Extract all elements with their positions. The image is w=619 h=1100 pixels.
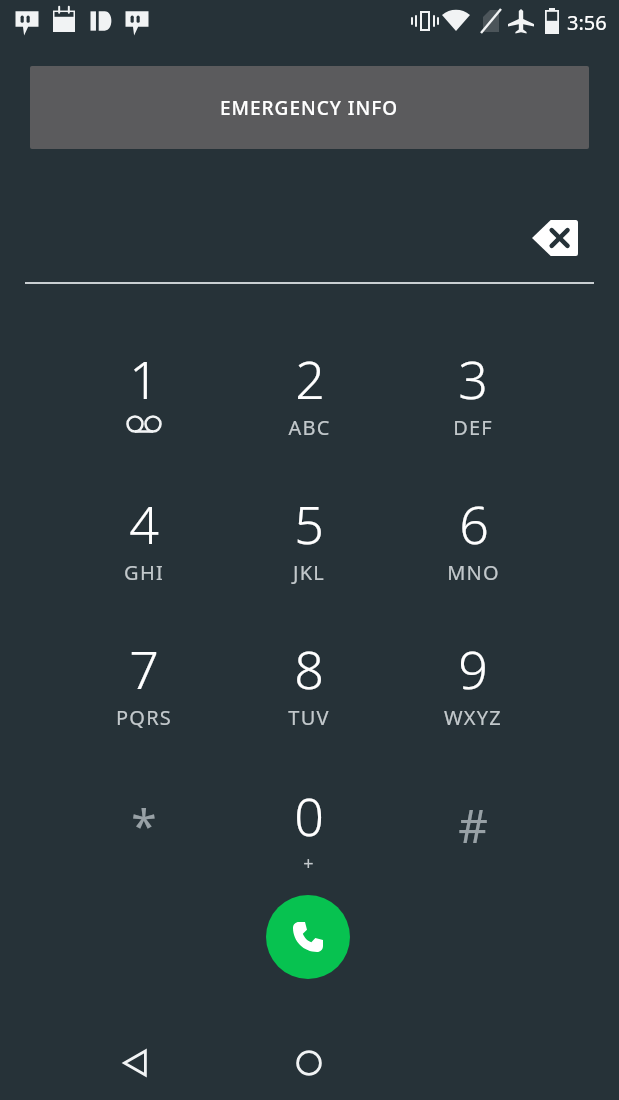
- button[interactable]: Key 7: [68, 633, 220, 763]
- button[interactable]: Key 0: [233, 780, 385, 910]
- staticText: 3:56: [567, 9, 607, 36]
- button[interactable]: Key 1: [68, 343, 220, 473]
- button[interactable]: Key 4: [68, 488, 220, 618]
- staticText: *: [131, 794, 157, 857]
- button[interactable]: Home: [279, 1033, 339, 1093]
- button[interactable]: Key 3: [397, 343, 549, 473]
- button[interactable]: Key #: [397, 786, 549, 916]
- button[interactable]: Back: [107, 1033, 167, 1093]
- staticText: 5: [294, 488, 324, 559]
- staticText: 7: [129, 633, 159, 704]
- button[interactable]: EMERGENCY INFO: [30, 66, 589, 149]
- staticText: MNO: [447, 559, 500, 586]
- button[interactable]: Key 2: [233, 343, 385, 473]
- staticText: JKL: [293, 559, 325, 586]
- staticText: ABC: [288, 414, 331, 441]
- staticText: 1: [129, 343, 159, 414]
- staticText: PQRS: [116, 704, 172, 731]
- staticText: DEF: [453, 414, 493, 441]
- button[interactable]: Key *: [68, 786, 220, 916]
- button[interactable]: Key 8: [233, 633, 385, 763]
- staticText: 4: [129, 488, 159, 559]
- staticText: 2: [295, 343, 325, 414]
- staticText: 8: [294, 633, 324, 704]
- button[interactable]: Call: [266, 895, 350, 979]
- staticText: TUV: [288, 704, 330, 731]
- staticText: +: [303, 851, 315, 876]
- staticText: 9: [458, 633, 488, 704]
- staticText: WXYZ: [444, 704, 502, 731]
- staticText: EMERGENCY INFO: [220, 95, 399, 121]
- staticText: GHI: [124, 559, 164, 586]
- staticText: 6: [459, 488, 489, 559]
- button[interactable]: Backspace: [515, 200, 595, 276]
- button[interactable]: Key 9: [397, 633, 549, 763]
- button[interactable]: Key 5: [233, 488, 385, 618]
- staticText: 3: [458, 343, 488, 414]
- staticText: 0: [294, 780, 324, 851]
- staticText: #: [458, 794, 488, 857]
- button[interactable]: Key 6: [397, 488, 549, 618]
